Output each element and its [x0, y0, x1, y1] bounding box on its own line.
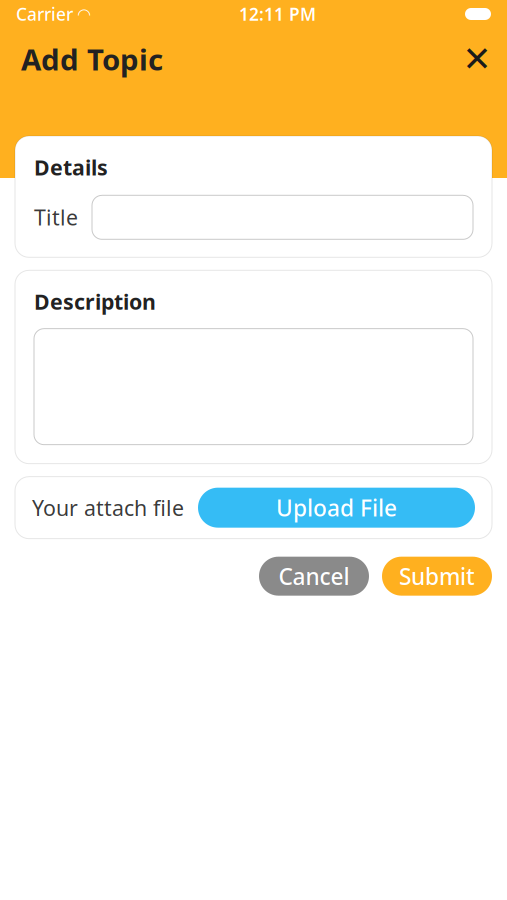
button[interactable]: Upload File	[198, 488, 475, 528]
staticText: 12:11 PM	[239, 2, 316, 25]
staticText: Submit	[399, 561, 475, 591]
staticText: Cancel	[278, 561, 349, 591]
staticText: Your attach file	[32, 493, 184, 522]
staticText: Title	[34, 203, 78, 231]
button[interactable]: Close	[455, 37, 499, 81]
staticText: Details	[34, 153, 108, 181]
staticText: Add Topic	[21, 39, 163, 78]
staticText: Description	[34, 287, 156, 316]
button[interactable]: Submit	[382, 557, 492, 596]
staticText: Carrier	[16, 2, 73, 25]
staticText: ◠	[78, 5, 90, 23]
button[interactable]: Cancel	[259, 557, 369, 596]
staticText: Upload File	[276, 493, 397, 523]
staticText: ✕	[462, 39, 491, 79]
